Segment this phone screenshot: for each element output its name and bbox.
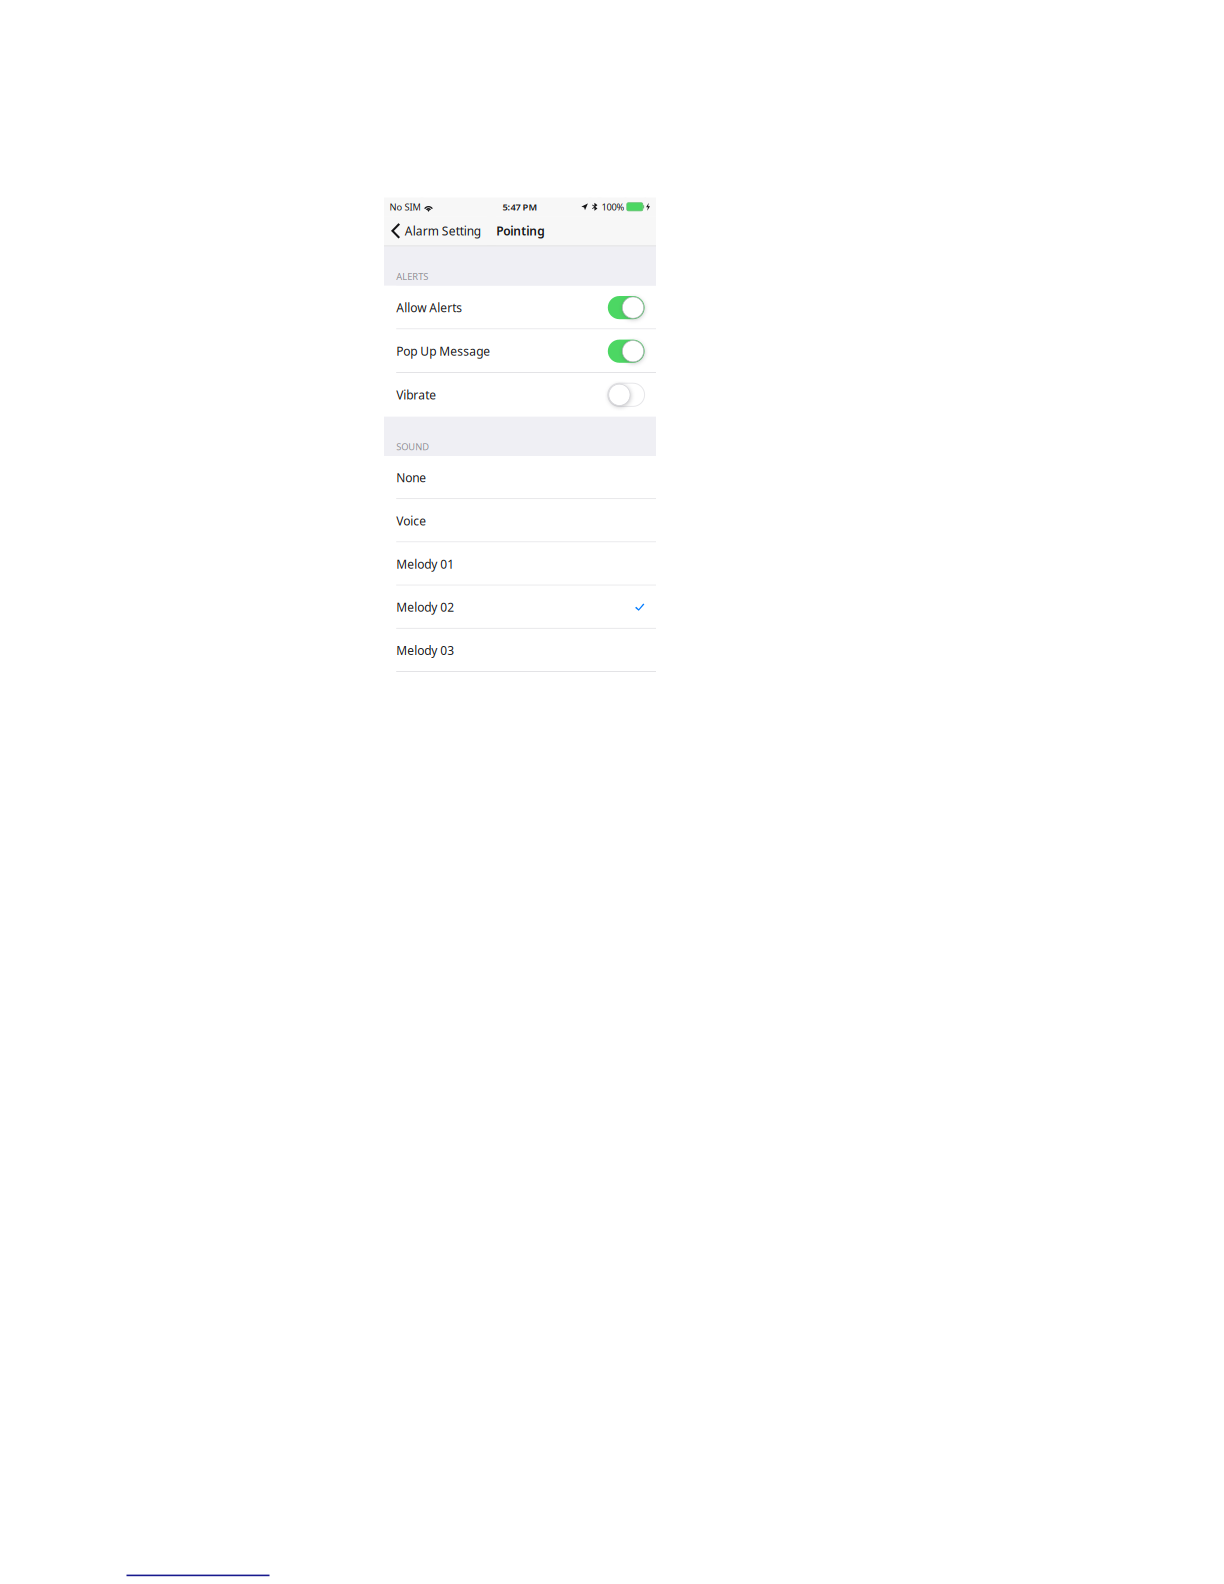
button[interactable]: Alarm Setting bbox=[384, 216, 487, 246]
button[interactable]: Pop Up Message bbox=[384, 329, 656, 373]
button[interactable]: Melody 01 bbox=[384, 542, 656, 586]
button[interactable]: Melody 03 bbox=[384, 629, 656, 672]
staticText: Melody 02 bbox=[396, 599, 454, 615]
staticText: Vibrate bbox=[396, 387, 436, 403]
button[interactable]: Melody 02 bbox=[384, 586, 656, 629]
staticText: SOUND bbox=[396, 440, 429, 453]
staticText: Melody 03 bbox=[396, 642, 454, 658]
staticText: None bbox=[396, 470, 426, 485]
button[interactable]: None bbox=[384, 456, 656, 499]
staticText: 5:47 PM bbox=[502, 200, 537, 213]
button[interactable]: Source link bbox=[0, 1569, 279, 1582]
button[interactable]: Allow Alerts bbox=[384, 286, 656, 329]
staticText: Voice bbox=[396, 513, 426, 529]
staticText: Melody 01 bbox=[396, 556, 454, 572]
staticText: No SIM bbox=[390, 201, 421, 213]
button[interactable]: Vibrate bbox=[384, 373, 656, 417]
staticText: 100% bbox=[602, 201, 625, 213]
staticText: Alarm Setting bbox=[405, 223, 481, 239]
staticText: Allow Alerts bbox=[396, 300, 462, 315]
staticText: Pointing bbox=[496, 223, 545, 239]
staticText: ALERTS bbox=[396, 270, 428, 283]
staticText: Pop Up Message bbox=[396, 343, 490, 359]
button[interactable]: Voice bbox=[384, 499, 656, 542]
